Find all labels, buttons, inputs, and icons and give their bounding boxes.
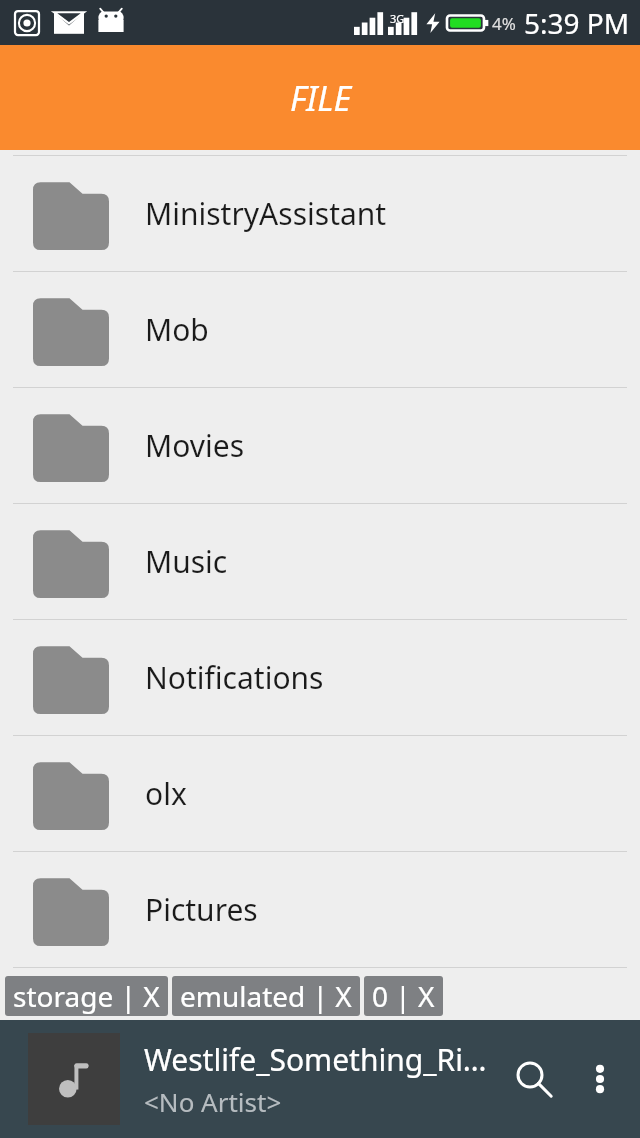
staticText: MinistryAssistant — [145, 193, 387, 234]
button[interactable]: 0 | X — [364, 976, 443, 1016]
staticText: emulated | X — [180, 977, 352, 1015]
staticText: 3G — [390, 11, 405, 26]
staticText: 5:39 PM — [524, 4, 630, 42]
button[interactable]: olx — [0, 736, 640, 851]
staticText: Westlife_Something_Righ.. — [144, 1039, 500, 1080]
staticText: Pictures — [145, 889, 258, 930]
button[interactable]: Movies — [0, 388, 640, 503]
button[interactable]: More options — [568, 1047, 632, 1111]
button[interactable]: Music — [0, 504, 640, 619]
staticText: 0 | X — [372, 977, 435, 1015]
button[interactable]: MinistryAssistant — [0, 156, 640, 271]
staticText: Mob — [145, 309, 209, 350]
button[interactable]: Mob — [0, 272, 640, 387]
button[interactable]: Pictures — [0, 852, 640, 967]
staticText: Notifications — [145, 657, 324, 698]
staticText: storage | X — [13, 977, 160, 1015]
button[interactable]: storage | X — [5, 976, 168, 1016]
staticText: Movies — [145, 425, 245, 466]
staticText: Music — [145, 541, 228, 582]
staticText: <No Artist> — [144, 1084, 282, 1119]
staticText: 4% — [492, 12, 516, 35]
staticText: FILE — [290, 75, 351, 121]
button[interactable]: Westlife_Something_Righ.. — [0, 1020, 640, 1138]
button[interactable]: emulated | X — [172, 976, 360, 1016]
button[interactable]: Notifications — [0, 620, 640, 735]
button[interactable]: Search — [500, 1045, 568, 1113]
staticText: olx — [145, 773, 187, 814]
